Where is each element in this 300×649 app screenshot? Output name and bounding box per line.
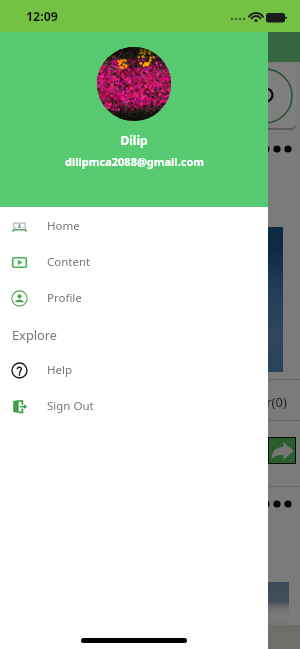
staticText: Help	[47, 362, 73, 378]
staticText: Sign Out	[47, 398, 94, 414]
button[interactable]: Content	[0, 244, 268, 280]
staticText: Profile	[47, 290, 82, 306]
button[interactable]: Home	[0, 208, 268, 244]
staticText: Spectator(0)	[213, 393, 287, 411]
staticText: Dilip	[120, 132, 148, 148]
button[interactable]: Sign Out	[0, 388, 268, 424]
staticText: 12:09	[26, 8, 58, 25]
button[interactable]: Help	[0, 352, 268, 388]
staticText: Home	[47, 218, 80, 234]
button[interactable]: Profile	[0, 280, 268, 316]
staticText: Content	[47, 254, 91, 270]
staticText: dilipmca2088@gmail.com	[65, 154, 204, 169]
staticText: Explore	[12, 326, 58, 343]
